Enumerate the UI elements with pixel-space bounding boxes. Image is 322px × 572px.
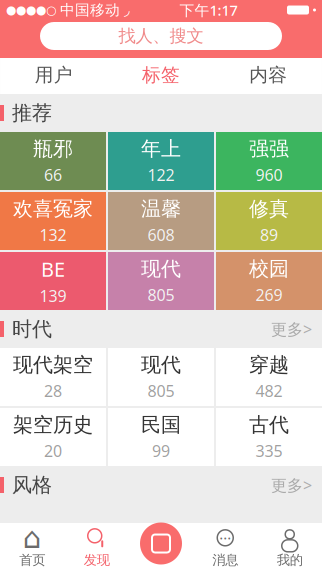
- button[interactable]: 找人、搜文: [0, 22, 322, 50]
- button[interactable]: 更多>: [271, 312, 322, 346]
- staticText: 608: [147, 224, 174, 245]
- staticText: 更多>: [271, 474, 312, 496]
- button[interactable]: 古代: [216, 408, 322, 466]
- button[interactable]: BE: [0, 252, 106, 310]
- staticText: 66: [44, 164, 62, 185]
- staticText: 269: [255, 284, 282, 305]
- staticText: 335: [255, 440, 282, 461]
- staticText: 时代: [12, 317, 52, 341]
- staticText: 修真: [249, 197, 289, 221]
- button[interactable]: 民国: [108, 408, 214, 466]
- staticText: 下午1:17: [179, 0, 237, 20]
- staticText: 民国: [141, 413, 181, 437]
- staticText: 发现: [84, 552, 110, 568]
- staticText: 欢喜冤家: [13, 197, 93, 221]
- staticText: 用户: [35, 63, 73, 86]
- staticText: 482: [255, 380, 282, 401]
- button[interactable]: 现代架空: [0, 348, 106, 406]
- button[interactable]: 用户: [0, 58, 107, 94]
- button[interactable]: 瓶邪: [0, 132, 106, 190]
- staticText: 找人、搜文: [118, 25, 203, 47]
- button[interactable]: 修真: [216, 192, 322, 250]
- staticText: ···: [219, 528, 231, 548]
- staticText: 20: [44, 440, 62, 461]
- button[interactable]: 年上: [108, 132, 214, 190]
- staticText: 首页: [19, 552, 45, 568]
- button[interactable]: 强强: [216, 132, 322, 190]
- button[interactable]: 校园: [216, 252, 322, 310]
- button[interactable]: 架空历史: [0, 408, 106, 466]
- staticText: 更多>: [271, 318, 312, 340]
- staticText: 139: [39, 285, 66, 306]
- staticText: 960: [255, 164, 282, 185]
- staticText: 瓶邪: [33, 137, 73, 161]
- button[interactable]: ⌂: [0, 523, 64, 572]
- staticText: 温馨: [141, 197, 181, 221]
- staticText: 我的: [277, 552, 303, 568]
- button[interactable]: 发现: [64, 523, 129, 572]
- staticText: 风格: [12, 473, 52, 497]
- staticText: 28: [44, 380, 62, 401]
- staticText: 架空历史: [13, 413, 93, 437]
- staticText: ●●●●○: [6, 3, 56, 17]
- staticText: 89: [260, 224, 278, 245]
- button[interactable]: 温馨: [108, 192, 214, 250]
- staticText: 805: [147, 284, 174, 305]
- button[interactable]: 标签: [107, 58, 215, 94]
- button[interactable]: 发布: [140, 522, 182, 564]
- button[interactable]: 现代: [108, 252, 214, 310]
- staticText: 内容: [249, 63, 287, 86]
- staticText: 标签: [142, 63, 180, 86]
- staticText: 122: [147, 164, 174, 185]
- staticText: 年上: [141, 137, 181, 161]
- staticText: 99: [152, 440, 170, 461]
- staticText: 现代架空: [13, 353, 93, 377]
- staticText: 805: [147, 380, 174, 401]
- button[interactable]: 更多>: [271, 468, 322, 502]
- staticText: 强强: [249, 137, 289, 161]
- staticText: 消息: [212, 552, 238, 568]
- staticText: 中国移动: [60, 1, 120, 19]
- button[interactable]: 穿越: [216, 348, 322, 406]
- button[interactable]: 我的: [257, 523, 322, 572]
- staticText: 校园: [249, 257, 289, 281]
- staticText: 现代: [141, 353, 181, 377]
- staticText: 132: [39, 224, 66, 245]
- staticText: 穿越: [249, 353, 289, 377]
- button[interactable]: ···: [193, 523, 257, 572]
- button[interactable]: 内容: [215, 58, 322, 94]
- staticText: 推荐: [12, 101, 52, 125]
- staticText: 现代: [141, 257, 181, 281]
- button[interactable]: 现代: [108, 348, 214, 406]
- button[interactable]: 欢喜冤家: [0, 192, 106, 250]
- staticText: ◞: [124, 2, 130, 18]
- staticText: BE: [41, 256, 65, 282]
- staticText: 古代: [249, 413, 289, 437]
- staticText: ⌂: [23, 521, 42, 554]
